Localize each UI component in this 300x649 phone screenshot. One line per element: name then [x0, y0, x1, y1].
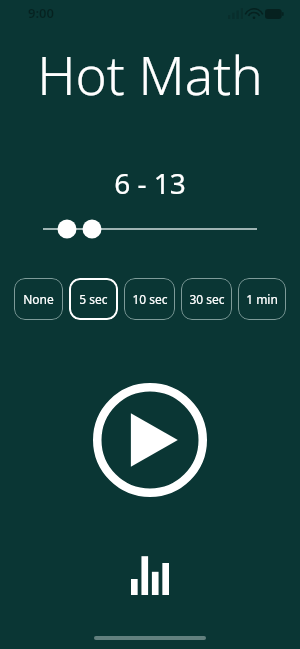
button[interactable]: Statistics	[122, 551, 178, 599]
staticText: 6 - 13	[0, 164, 300, 202]
staticText: None	[23, 291, 54, 307]
button[interactable]	[0, 216, 300, 242]
staticText: 5 sec	[79, 291, 108, 307]
button[interactable]: None	[14, 278, 63, 320]
button[interactable]: 1 min	[238, 278, 286, 320]
staticText: Hot Math	[0, 38, 300, 110]
button[interactable]: 5 sec	[69, 278, 118, 320]
button[interactable]: 30 sec	[181, 278, 232, 320]
staticText: 10 sec	[132, 291, 168, 307]
button[interactable]: 10 sec	[124, 278, 175, 320]
staticText: 1 min	[246, 291, 278, 307]
staticText: 9:00	[28, 4, 54, 22]
button[interactable]: Start	[92, 382, 208, 498]
staticText: 30 sec	[189, 291, 225, 307]
